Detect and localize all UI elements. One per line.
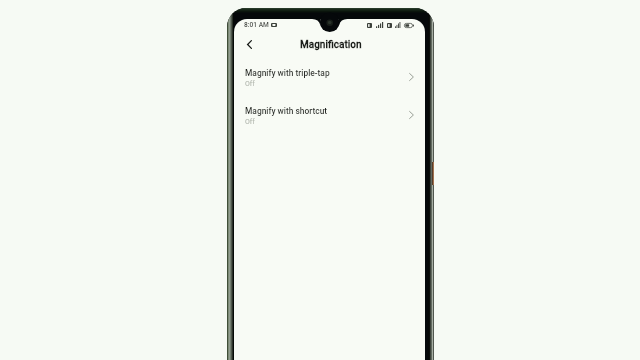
button[interactable]: Navigate back <box>240 35 258 53</box>
staticText: Magnification <box>300 39 362 51</box>
staticText: 8:01 AM <box>244 21 269 29</box>
staticText: Magnify with triple-tap <box>245 68 330 78</box>
button[interactable]: Magnify with shortcut <box>234 105 425 127</box>
staticText: Off <box>245 80 255 88</box>
button[interactable]: Magnify with triple-tap <box>234 67 425 89</box>
staticText: Magnify with shortcut <box>245 106 328 116</box>
staticText: Off <box>245 118 255 126</box>
